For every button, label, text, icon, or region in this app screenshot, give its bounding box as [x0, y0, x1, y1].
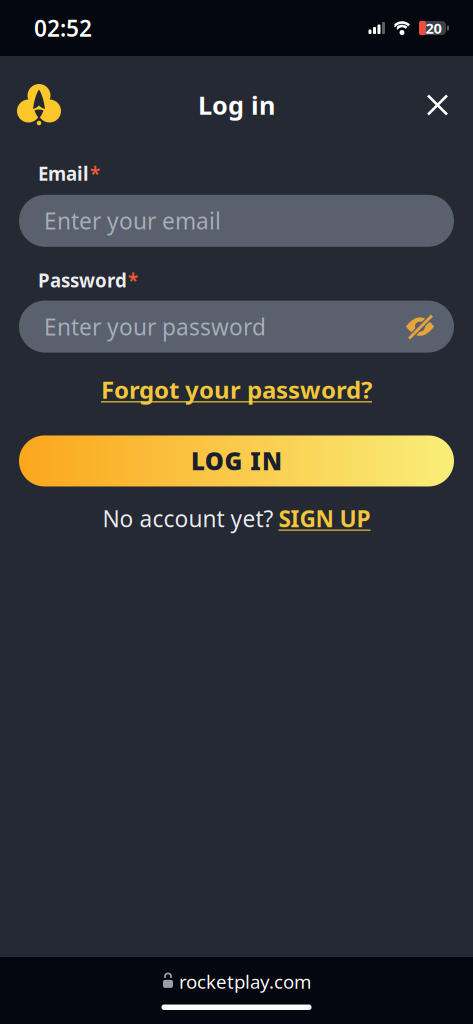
- staticText: *: [90, 161, 100, 186]
- staticText: Password: [38, 268, 127, 293]
- button[interactable]: No account yet?: [102, 503, 370, 534]
- button[interactable]: LOG IN: [19, 435, 454, 486]
- staticText: 20: [425, 18, 441, 38]
- button[interactable]: Forgot your password?: [101, 374, 372, 405]
- staticText: rocketplay.com: [179, 969, 311, 994]
- staticText: Forgot your password?: [101, 374, 372, 405]
- button[interactable]: rocketplay.com: [162, 969, 311, 994]
- button[interactable]: Enter your password: [19, 301, 454, 353]
- button[interactable]: Enter your email: [19, 195, 454, 247]
- staticText: Enter your email: [44, 206, 221, 236]
- staticText: Log in: [198, 88, 275, 122]
- staticText: LOG IN: [191, 445, 282, 477]
- staticText: Enter your password: [44, 311, 266, 342]
- button[interactable]: [420, 87, 455, 122]
- staticText: No account yet?: [102, 503, 273, 534]
- staticText: Email: [38, 161, 89, 186]
- staticText: SIGN UP: [278, 503, 370, 534]
- staticText: *: [128, 268, 138, 293]
- staticText: 02:52: [34, 13, 92, 43]
- button[interactable]: [17, 83, 61, 127]
